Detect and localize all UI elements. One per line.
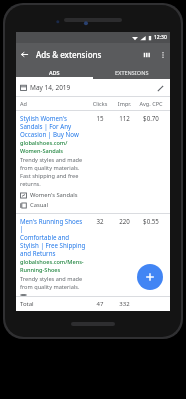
staticText: 112 [113, 114, 136, 122]
staticText: Casual [30, 201, 49, 209]
staticText: Total [20, 300, 87, 308]
staticText: from quality materials. [20, 283, 80, 291]
staticText: $0.55 [136, 217, 166, 225]
staticText: Stylish | Free Shipping [20, 241, 86, 249]
staticText: EXTENSIONS [115, 69, 149, 76]
staticText: globalshoes.com/ [20, 139, 68, 147]
staticText: Women's Sandals [30, 191, 78, 199]
staticText: Fast shipping and free [20, 172, 79, 180]
button[interactable]: Edit [154, 82, 166, 94]
button[interactable]: Create ad [137, 264, 163, 290]
button[interactable]: Men's Running Shoes | [16, 214, 170, 296]
button[interactable]: EXTENSIONS [93, 65, 170, 79]
staticText: 332 [113, 300, 136, 308]
staticText: Impr. [113, 100, 136, 107]
staticText: and Returns [20, 249, 56, 257]
staticText: Trendy styles and made [20, 156, 83, 164]
staticText: ADS [49, 69, 60, 76]
staticText: Ads & extensions [36, 49, 102, 60]
staticText: Running-Shoes [20, 266, 61, 274]
staticText: 32 [87, 217, 113, 225]
staticText: returns. [20, 180, 41, 188]
staticText: 220 [113, 217, 136, 225]
staticText: Clicks [87, 100, 113, 107]
staticText: Sandals | For Any [20, 122, 72, 130]
button[interactable]: Stylish Women's [16, 111, 170, 213]
button[interactable]: More options [155, 47, 170, 62]
button[interactable]: Back [16, 46, 33, 63]
staticText: 15 [87, 114, 113, 122]
staticText: Trendy styles and made [20, 275, 83, 283]
staticText: from quality materials. [20, 164, 80, 172]
staticText: Occasion | Buy Now [20, 130, 79, 138]
staticText: Women-Sandals [20, 147, 64, 155]
staticText: Comfortable and [20, 233, 70, 241]
staticText: Men's Running Shoes | [20, 217, 87, 233]
button[interactable]: Columns [138, 46, 155, 63]
staticText: Ad [20, 100, 87, 107]
button[interactable]: May 14, 2019 [16, 79, 170, 96]
staticText: 12:30 [154, 34, 167, 41]
staticText: 47 [87, 300, 113, 308]
staticText: globalshoes.com/Mens- [20, 258, 84, 266]
staticText: $0.70 [136, 114, 166, 122]
button[interactable]: ADS [16, 65, 93, 79]
staticText: Stylish Women's [20, 114, 67, 122]
staticText: May 14, 2019 [30, 83, 71, 92]
staticText: Avg. CPC [136, 100, 166, 107]
